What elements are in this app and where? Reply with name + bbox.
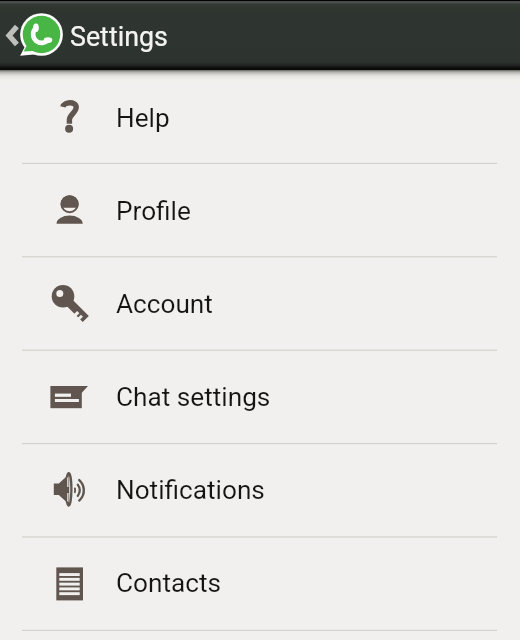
button[interactable]: Chat settings <box>0 349 520 442</box>
staticText: Account <box>116 289 213 320</box>
staticText: Settings <box>70 21 168 52</box>
staticText: Contacts <box>116 568 222 599</box>
staticText: Chat settings <box>116 382 271 413</box>
button[interactable]: Contacts <box>0 535 520 628</box>
staticText: Help <box>116 103 170 134</box>
button[interactable]: Profile <box>0 163 520 256</box>
staticText: Notifications <box>116 475 265 506</box>
button[interactable]: Help <box>0 70 520 163</box>
staticText: Profile <box>116 196 191 227</box>
button[interactable]: Back <box>0 13 22 57</box>
button[interactable]: Account <box>0 256 520 349</box>
button[interactable]: Notifications <box>0 442 520 535</box>
